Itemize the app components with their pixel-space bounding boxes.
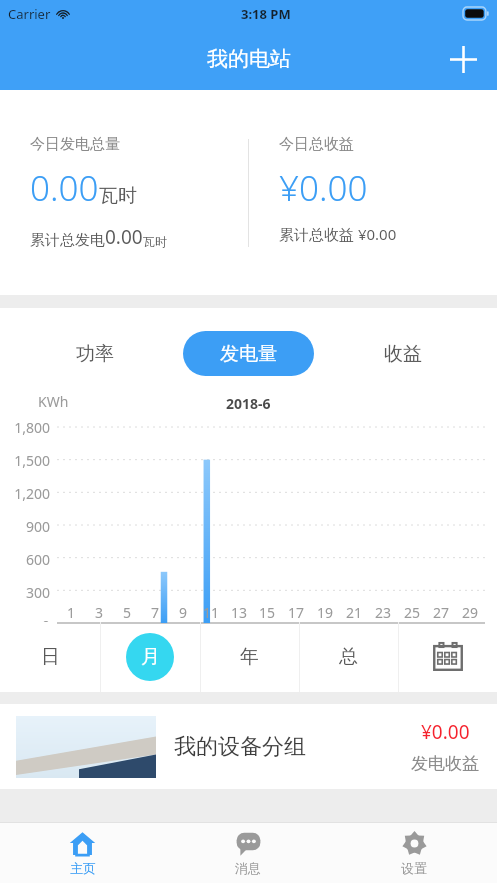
staticText: 17 [288, 603, 305, 622]
button[interactable]: 年 [200, 622, 299, 692]
staticText: 11 [203, 603, 220, 622]
staticText: 3 [95, 603, 104, 622]
staticText: 今日发电总量 [30, 135, 120, 154]
button[interactable]: 消息 [165, 822, 331, 883]
staticText: 发电收益 [411, 753, 479, 774]
staticText: 9 [179, 603, 188, 622]
staticText: KWh [38, 392, 69, 411]
button[interactable]: 发电量 [183, 331, 314, 376]
staticText: 月 [141, 645, 160, 669]
staticText: 15 [259, 603, 276, 622]
staticText: 300 [25, 583, 50, 602]
staticText: 累计总发电 [30, 231, 105, 250]
staticText: 收益 [384, 342, 422, 366]
staticText: 0 [41, 616, 50, 622]
staticText: 600 [25, 550, 50, 569]
staticText: 1,500 [14, 451, 50, 470]
staticText: 我的设备分组 [174, 733, 306, 761]
staticText: 19 [317, 603, 334, 622]
staticText: 900 [25, 517, 50, 536]
staticText: 21 [346, 603, 363, 622]
button[interactable]: 总 [299, 622, 398, 692]
button[interactable]: Pick date [398, 622, 497, 692]
button[interactable]: 主页 [0, 822, 165, 883]
staticText: 1,200 [14, 484, 50, 503]
staticText: ¥0.00 [421, 719, 470, 745]
staticText: 发电量 [220, 342, 277, 366]
staticText: 设置 [401, 860, 427, 876]
button[interactable]: 收益 [337, 331, 468, 376]
staticText: 主页 [70, 860, 96, 876]
button[interactable]: 月 [100, 622, 200, 692]
staticText: 总 [339, 645, 358, 669]
staticText: 消息 [235, 860, 261, 876]
staticText: 23 [375, 603, 392, 622]
staticText: 年 [240, 645, 259, 669]
staticText: 7 [151, 603, 160, 622]
staticText: 日 [41, 645, 60, 669]
staticText: 5 [123, 603, 132, 622]
button[interactable]: 我的设备分组 [0, 704, 497, 789]
staticText: 27 [433, 603, 450, 622]
button[interactable]: 日 [0, 622, 100, 692]
staticText: 瓦时 [99, 184, 137, 208]
staticText: 1 [67, 603, 76, 622]
button[interactable]: Add station [441, 37, 485, 81]
staticText: 功率 [76, 342, 114, 366]
staticText: 2018-6 [226, 394, 271, 413]
staticText: Carrier [8, 5, 51, 23]
button[interactable]: 设置 [331, 822, 497, 883]
staticText: ¥0.00 [279, 164, 368, 212]
staticText: 0.00 [105, 224, 143, 250]
staticText: 0.00 [30, 164, 99, 212]
staticText: 累计总收益 ¥0.00 [279, 224, 397, 244]
staticText: 13 [231, 603, 248, 622]
staticText: 29 [462, 603, 479, 622]
staticText: 1,800 [14, 418, 50, 437]
staticText: 今日总收益 [279, 135, 354, 154]
staticText: 我的电站 [207, 46, 291, 72]
button[interactable]: 功率 [29, 331, 160, 376]
staticText: 瓦时 [143, 234, 167, 249]
staticText: 25 [404, 603, 421, 622]
staticText: 3:18 PM [241, 5, 291, 23]
